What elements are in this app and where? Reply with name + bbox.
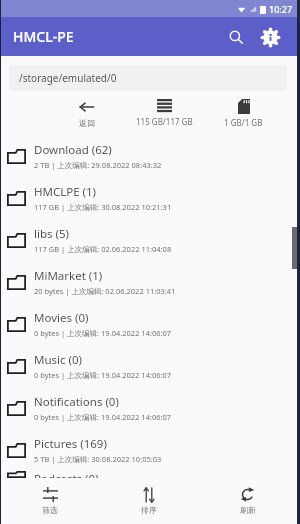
button[interactable]: libs (5) bbox=[1, 219, 297, 261]
button[interactable]: Podcasts (0) bbox=[1, 471, 297, 478]
button[interactable]: 刷新 bbox=[198, 478, 297, 524]
staticText: Download (62) bbox=[34, 142, 112, 158]
button[interactable]: Notifications (0) bbox=[1, 387, 297, 429]
button[interactable]: Search bbox=[221, 22, 251, 52]
staticText: Music (0) bbox=[34, 352, 83, 368]
button[interactable]: Music (0) bbox=[1, 345, 297, 387]
button[interactable]: 筛选 bbox=[1, 478, 99, 524]
staticText: 筛选 bbox=[42, 505, 58, 515]
staticText: MiMarket (1) bbox=[34, 268, 103, 284]
staticText: 0 bytes | 上次编辑: 19.04.2022 14:06:07 bbox=[34, 412, 172, 422]
button[interactable]: Settings bbox=[255, 22, 285, 52]
staticText: 5 TB | 上次编辑: 30.08.2022 10:05:03 bbox=[34, 454, 162, 464]
button[interactable]: HMCLPE (1) bbox=[1, 177, 297, 219]
staticText: Notifications (0) bbox=[34, 394, 119, 410]
staticText: 2 TB | 上次编辑: 29.08.2022 08:43:32 bbox=[34, 160, 162, 170]
button[interactable]: MiMarket (1) bbox=[1, 261, 297, 303]
button[interactable]: 排序 bbox=[99, 478, 198, 524]
staticText: 10:27 bbox=[269, 3, 293, 15]
staticText: /storage/emulated/0 bbox=[19, 71, 117, 85]
button[interactable]: 返回 bbox=[51, 97, 123, 128]
staticText: 0 bytes | 上次编辑: 19.04.2022 14:06:07 bbox=[34, 370, 172, 380]
staticText: 117 GB | 上次编辑: 02.06.2022 11:04:08 bbox=[34, 244, 172, 254]
staticText: HMCL-PE bbox=[13, 27, 74, 46]
staticText: HMCLPE (1) bbox=[34, 184, 97, 200]
button[interactable]: Movies (0) bbox=[1, 303, 297, 345]
button[interactable]: Pictures (169) bbox=[1, 429, 297, 471]
button[interactable]: 115 GB/117 GB bbox=[123, 97, 206, 127]
staticText: Pictures (169) bbox=[34, 436, 107, 452]
button[interactable]: Download (62) bbox=[1, 135, 297, 177]
staticText: 117 GB | 上次编辑: 30.08.2022 10:21:31 bbox=[34, 202, 172, 212]
staticText: 0 bytes | 上次编辑: 19.04.2022 14:06:07 bbox=[34, 328, 172, 338]
staticText: 20 bytes | 上次编辑: 02.06.2022 11:03:41 bbox=[34, 286, 176, 296]
staticText: libs (5) bbox=[34, 226, 69, 242]
staticText: 刷新 bbox=[240, 505, 256, 515]
button[interactable]: /storage/emulated/0 bbox=[9, 65, 287, 91]
staticText: Movies (0) bbox=[34, 310, 89, 326]
staticText: 1 GB/1 GB bbox=[224, 117, 263, 128]
staticText: 排序 bbox=[141, 505, 157, 515]
staticText: 返回 bbox=[79, 118, 95, 128]
staticText: Podcasts (0) bbox=[34, 471, 99, 478]
button[interactable]: 1 GB/1 GB bbox=[206, 97, 281, 128]
staticText: 115 GB/117 GB bbox=[136, 116, 193, 127]
